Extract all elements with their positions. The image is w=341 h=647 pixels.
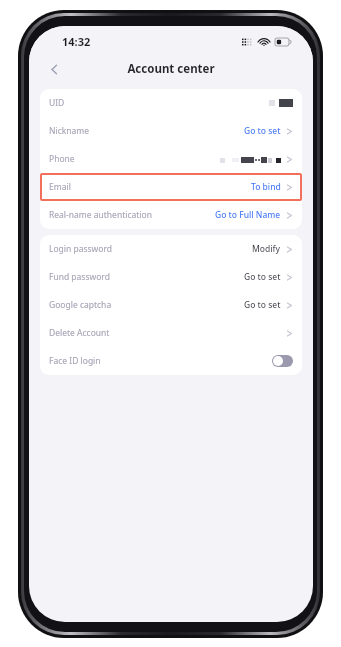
staticText: Email (49, 181, 71, 193)
button[interactable]: Back (41, 56, 67, 82)
other: Face ID login toggle (272, 355, 293, 367)
staticText: Modify (252, 243, 281, 255)
staticText: Go to set (244, 125, 281, 137)
staticText: UID (49, 97, 65, 109)
button[interactable]: UID (40, 89, 302, 117)
staticText: Go to set (244, 271, 281, 283)
staticText: Real-name authentication (49, 209, 152, 221)
staticText: Nickname (49, 125, 90, 137)
staticText: Face ID login (49, 355, 101, 367)
staticText: Account center (127, 61, 215, 77)
staticText: Phone (49, 153, 75, 165)
button[interactable]: Email (40, 173, 302, 201)
staticText: Google captcha (49, 299, 112, 311)
button[interactable]: Login password (40, 235, 302, 263)
button[interactable]: Fund password (40, 263, 302, 291)
button[interactable]: Real-name authentication (40, 201, 302, 229)
staticText: Fund password (49, 271, 110, 283)
staticText: Go to Full Name (215, 209, 281, 221)
button[interactable]: Face ID login (40, 347, 302, 375)
button[interactable]: Phone (40, 145, 302, 173)
button[interactable]: Delete Account (40, 319, 302, 347)
staticText: Go to set (244, 299, 281, 311)
staticText: Login password (49, 243, 113, 255)
button[interactable]: Nickname (40, 117, 302, 145)
button[interactable]: Google captcha (40, 291, 302, 319)
staticText: 14:32 (62, 34, 91, 49)
staticText: Delete Account (49, 327, 110, 339)
staticText: To bind (251, 181, 281, 193)
